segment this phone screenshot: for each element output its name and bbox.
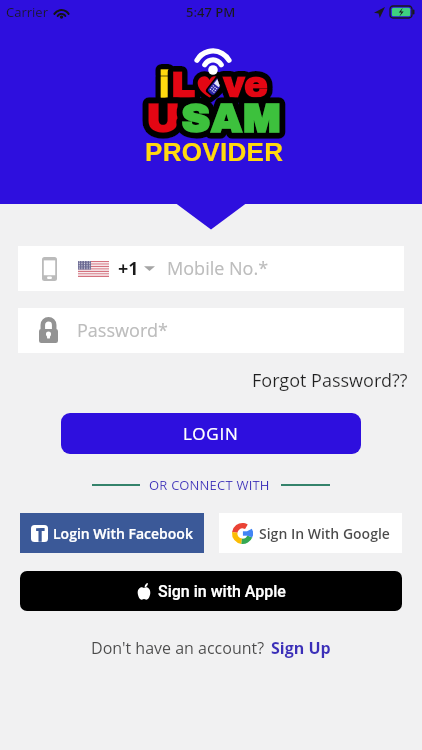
button[interactable]: Sign Up [271,637,331,659]
staticText: i [159,65,171,104]
button[interactable]: Login With Facebook [20,513,204,553]
staticText: Login With Facebook [53,524,193,543]
staticText: L [171,65,196,104]
staticText: Carrier [6,3,48,21]
staticText: ve [223,65,269,104]
staticText: LOGIN [183,422,239,445]
other: Phone number [42,257,57,281]
staticText: OR CONNECT WITH [149,476,270,494]
staticText: Sign In With Google [259,524,390,543]
button[interactable]: Sign In With Google [219,513,402,553]
staticText: Sign in with Apple [158,582,286,601]
staticText: Don't have an account? [91,637,265,659]
staticText: U [146,96,181,141]
staticText: L [171,65,196,104]
staticText: U [146,96,181,141]
button[interactable]: Sign in with Apple [20,571,402,611]
staticText: Mobile No.* [167,256,269,281]
staticText: +1 [118,256,139,281]
button[interactable]: Password [18,308,404,353]
staticText: ve [223,65,269,104]
button[interactable]: Phone number [18,246,404,291]
staticText: Password* [77,318,168,343]
staticText: SAM [181,96,282,141]
button[interactable]: LOGIN [61,413,361,454]
staticText: Forgot Password?? [252,368,408,393]
staticText: Sign Up [271,637,331,659]
other: Password [39,318,58,343]
staticText: 5:47 PM [186,3,236,21]
staticText: i [159,65,171,104]
button[interactable]: Forgot Password?? [238,362,422,399]
staticText: PROVIDER [145,137,284,166]
staticText: SAM [181,96,282,141]
